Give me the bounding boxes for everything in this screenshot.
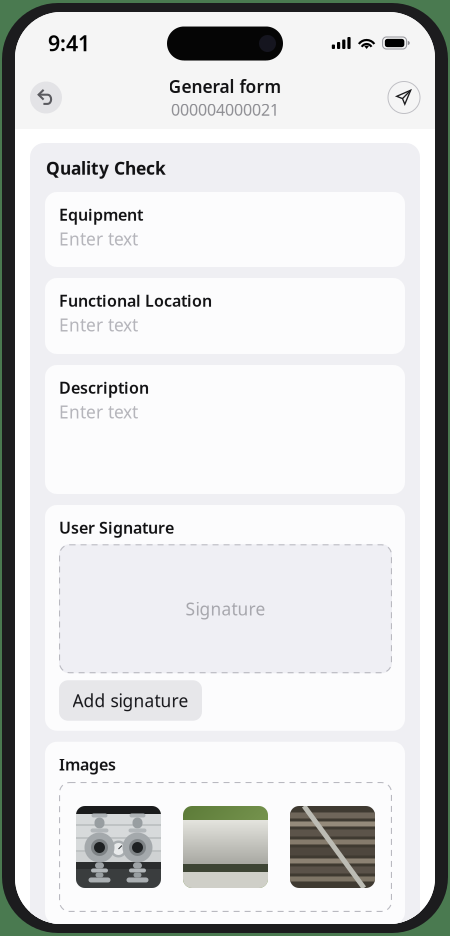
staticText: Images	[59, 754, 116, 775]
staticText: Add signature	[72, 689, 188, 712]
staticText: Description	[59, 377, 149, 398]
button[interactable]: Send	[388, 81, 420, 113]
staticText: Signature	[185, 597, 265, 620]
staticText: 9:41	[48, 29, 90, 57]
staticText: 000004000021	[171, 99, 279, 120]
staticText: Equipment	[59, 204, 143, 225]
staticText: Enter text	[59, 227, 138, 250]
staticText: Enter text	[59, 400, 138, 423]
button[interactable]: Back	[30, 81, 62, 113]
staticText: Quality Check	[46, 156, 166, 179]
button[interactable]: Add signature	[59, 680, 202, 721]
staticText: User Signature	[59, 517, 174, 538]
staticText: Enter text	[59, 313, 138, 336]
staticText: Functional Location	[59, 290, 212, 311]
staticText: General form	[168, 75, 281, 98]
